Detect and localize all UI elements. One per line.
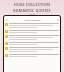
staticText: ROMANTIC QUOTES (13, 8, 51, 13)
button[interactable] (4, 53, 60, 58)
button[interactable] (4, 46, 60, 53)
button[interactable] (4, 22, 60, 29)
button[interactable]: Back (5, 18, 8, 21)
button[interactable] (4, 29, 60, 34)
button[interactable]: Search (56, 18, 59, 21)
staticText: Love Quotes (24, 18, 41, 21)
button[interactable] (4, 34, 60, 41)
button[interactable] (4, 41, 60, 46)
staticText: HUGE COLLECTION (14, 2, 50, 7)
